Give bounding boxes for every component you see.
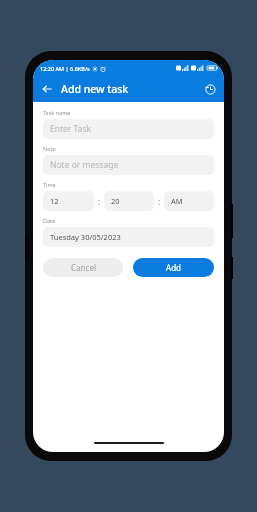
staticText: : bbox=[98, 196, 101, 207]
button[interactable]: History bbox=[202, 81, 218, 97]
button[interactable]: Back bbox=[39, 81, 55, 97]
staticText: Add new task bbox=[61, 82, 129, 96]
staticText: Tuesday 30/05/2023 bbox=[50, 232, 121, 242]
staticText: Enter Task bbox=[50, 123, 91, 135]
button[interactable]: Cancel bbox=[43, 258, 123, 277]
button[interactable]: 12 bbox=[43, 191, 94, 211]
button[interactable]: Enter Task bbox=[43, 119, 214, 139]
button[interactable]: Add bbox=[133, 258, 214, 277]
button[interactable]: 20 bbox=[104, 191, 154, 211]
staticText: Add bbox=[166, 262, 181, 273]
staticText: Date bbox=[43, 217, 56, 224]
button[interactable]: Note or message bbox=[43, 155, 214, 175]
staticText: Note bbox=[43, 145, 56, 152]
staticText: Time bbox=[43, 181, 56, 188]
button[interactable]: AM bbox=[164, 191, 214, 211]
staticText: Note or message bbox=[50, 159, 119, 171]
staticText: AM bbox=[171, 196, 183, 206]
staticText: Cancel bbox=[71, 262, 96, 273]
staticText: 12 bbox=[50, 196, 59, 206]
staticText: : bbox=[158, 196, 161, 207]
button[interactable]: Tuesday 30/05/2023 bbox=[43, 227, 214, 247]
staticText: 20 bbox=[111, 196, 120, 206]
staticText: Task name bbox=[43, 109, 71, 116]
staticText: 12:20 AM | 6.6KB/s bbox=[40, 65, 90, 72]
